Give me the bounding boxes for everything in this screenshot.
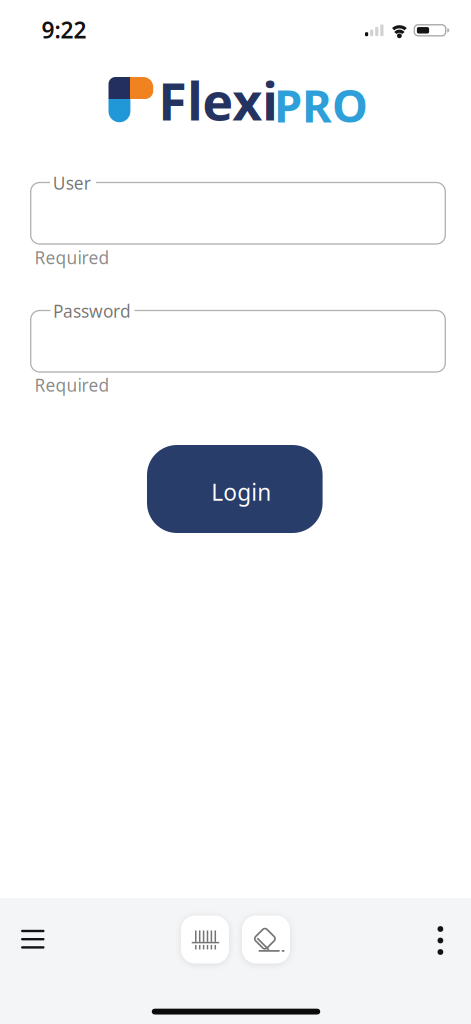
button[interactable]: More options [418, 918, 462, 962]
staticText: User [53, 171, 91, 194]
staticText: PRO [274, 75, 368, 135]
staticText: 9:22 [41, 15, 86, 45]
button[interactable]: User [31, 182, 445, 244]
button[interactable]: Erase [242, 915, 290, 963]
button[interactable]: Menu [11, 917, 55, 961]
button[interactable]: Password [31, 310, 445, 372]
button[interactable]: Login [147, 445, 323, 533]
button[interactable]: Scan barcode [181, 915, 229, 963]
staticText: Login [211, 477, 271, 507]
staticText: Required [34, 373, 109, 396]
staticText: Flexi [158, 66, 278, 135]
staticText: Required [34, 246, 109, 269]
staticText: Password [53, 299, 131, 322]
